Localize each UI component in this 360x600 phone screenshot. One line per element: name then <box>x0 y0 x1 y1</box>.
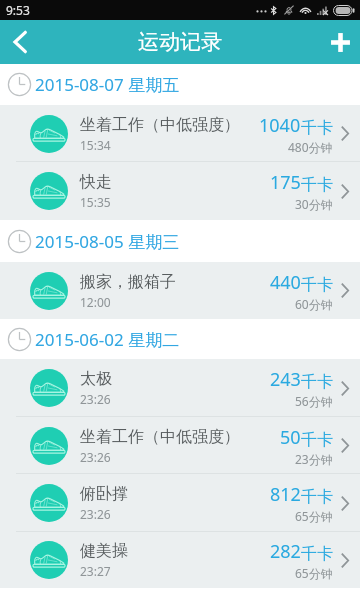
staticText: 65分钟 <box>295 565 333 581</box>
staticText: 健美操 <box>80 541 128 561</box>
staticText: 千卡 <box>301 275 333 295</box>
staticText: 282 <box>270 539 301 564</box>
staticText: 812 <box>270 482 301 507</box>
staticText: 搬家，搬箱子 <box>80 272 176 292</box>
staticText: 15:34 <box>80 137 111 153</box>
button[interactable]: Back <box>0 20 40 64</box>
button[interactable]: 搬家，搬箱子 <box>0 262 360 319</box>
staticText: 480分钟 <box>288 139 333 155</box>
staticText: 440 <box>270 270 301 295</box>
staticText: 运动记录 <box>138 29 222 55</box>
staticText: 23:26 <box>80 449 111 465</box>
staticText: 15:35 <box>80 194 111 210</box>
staticText: 9:53 <box>6 2 30 18</box>
staticText: 太极 <box>80 369 112 389</box>
staticText: 坐着工作（中低强度） <box>80 427 240 447</box>
staticText: 2015-06-02 星期二 <box>35 328 180 351</box>
staticText: 23:26 <box>80 506 111 522</box>
staticText: 12:00 <box>80 294 111 310</box>
staticText: 俯卧撑 <box>80 484 128 504</box>
staticText: 2015-08-05 星期三 <box>35 230 180 253</box>
staticText: 56分钟 <box>295 393 333 409</box>
staticText: 坐着工作（中低强度） <box>80 115 240 135</box>
button[interactable]: 快走 <box>0 162 360 220</box>
staticText: 1040 <box>259 113 301 138</box>
button[interactable]: Add <box>320 20 360 64</box>
staticText: 243 <box>270 367 301 392</box>
staticText: 60分钟 <box>295 296 333 312</box>
staticText: 50 <box>280 425 301 450</box>
staticText: 快走 <box>80 172 112 192</box>
staticText: 23:26 <box>80 391 111 407</box>
staticText: 千卡 <box>301 544 333 564</box>
staticText: 30分钟 <box>295 196 333 212</box>
button[interactable]: 太极 <box>0 359 360 417</box>
staticText: 23:27 <box>80 563 111 579</box>
button[interactable]: 坐着工作（中低强度） <box>0 105 360 162</box>
staticText: 千卡 <box>301 118 333 138</box>
staticText: 千卡 <box>301 430 333 450</box>
button[interactable]: 坐着工作（中低强度） <box>0 417 360 474</box>
staticText: 2015-08-07 星期五 <box>35 73 180 96</box>
staticText: 千卡 <box>301 175 333 195</box>
staticText: 千卡 <box>301 372 333 392</box>
staticText: 65分钟 <box>295 508 333 524</box>
button[interactable]: 俯卧撑 <box>0 474 360 532</box>
staticText: 千卡 <box>301 487 333 507</box>
staticText: 175 <box>270 170 301 195</box>
button[interactable]: 健美操 <box>0 532 360 588</box>
staticText: 23分钟 <box>295 451 333 467</box>
